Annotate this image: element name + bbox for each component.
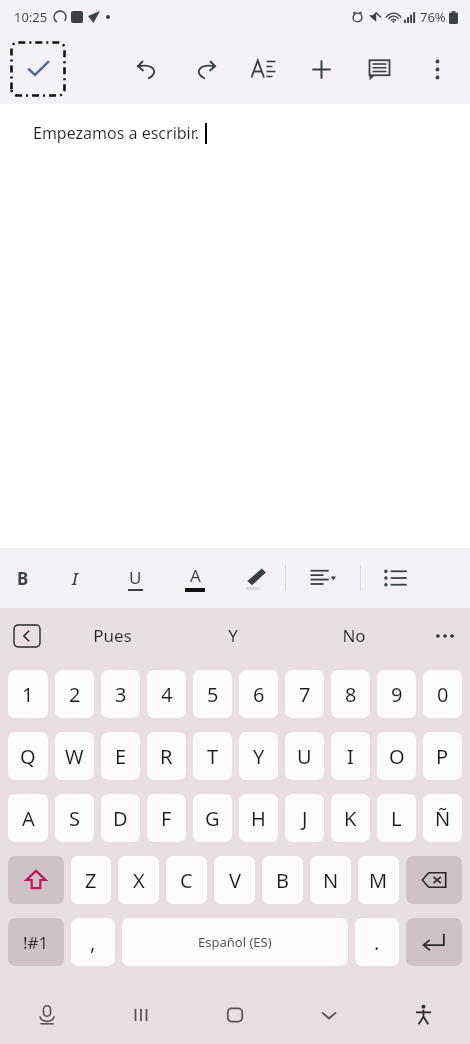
button[interactable]: Symbols bbox=[8, 918, 64, 966]
button[interactable]: A bbox=[8, 794, 48, 842]
button[interactable]: 3 bbox=[101, 670, 140, 718]
staticText: U bbox=[129, 566, 142, 589]
button[interactable]: 9 bbox=[377, 670, 416, 718]
button[interactable]: Alignment bbox=[286, 548, 360, 608]
button[interactable]: H bbox=[239, 794, 278, 842]
button[interactable]: Y bbox=[172, 608, 293, 663]
button[interactable]: L bbox=[377, 794, 416, 842]
staticText: B bbox=[276, 867, 289, 894]
button[interactable]: Period bbox=[355, 918, 399, 966]
staticText: 5 bbox=[207, 681, 219, 708]
button[interactable]: Comma bbox=[71, 918, 115, 966]
staticText: A bbox=[190, 564, 201, 587]
button[interactable]: Highlight bbox=[225, 548, 285, 608]
button[interactable]: Z bbox=[71, 856, 111, 904]
button[interactable]: No bbox=[293, 608, 414, 663]
button[interactable]: U bbox=[285, 732, 324, 780]
button[interactable]: 4 bbox=[147, 670, 186, 718]
button[interactable]: O bbox=[377, 732, 416, 780]
button[interactable]: P bbox=[423, 732, 462, 780]
button[interactable]: More suggestions bbox=[420, 611, 470, 661]
button[interactable]: Hide keyboard bbox=[282, 985, 376, 1044]
button[interactable]: Italic bbox=[45, 548, 105, 608]
button[interactable]: X bbox=[118, 856, 159, 904]
button[interactable]: Bullet list bbox=[361, 548, 431, 608]
button[interactable]: Accessibility bbox=[376, 985, 470, 1044]
staticText: 1 bbox=[22, 681, 34, 708]
staticText: J bbox=[302, 805, 308, 832]
button[interactable]: D bbox=[101, 794, 140, 842]
staticText: 10:25 bbox=[14, 8, 48, 26]
staticText: A bbox=[22, 805, 35, 832]
staticText: W bbox=[65, 743, 84, 770]
button[interactable]: Y bbox=[239, 732, 278, 780]
button[interactable]: I bbox=[331, 732, 370, 780]
button[interactable]: Q bbox=[8, 732, 48, 780]
button[interactable]: W bbox=[55, 732, 94, 780]
staticText: , bbox=[90, 929, 96, 956]
button[interactable]: C bbox=[166, 856, 207, 904]
button[interactable]: Backspace bbox=[406, 856, 462, 904]
staticText: Pues bbox=[93, 624, 132, 647]
button[interactable]: Home bbox=[188, 985, 282, 1044]
button[interactable]: Shift bbox=[8, 856, 64, 904]
button[interactable]: Add bbox=[292, 40, 350, 98]
button[interactable]: E bbox=[101, 732, 140, 780]
button[interactable]: Text format bbox=[234, 40, 292, 98]
button[interactable]: Enter bbox=[406, 918, 462, 966]
staticText: Q bbox=[20, 743, 36, 770]
button[interactable]: 6 bbox=[239, 670, 278, 718]
staticText: F bbox=[161, 805, 172, 832]
button[interactable]: Space bbox=[122, 918, 348, 966]
button[interactable]: Recent apps bbox=[94, 985, 188, 1044]
button[interactable]: 2 bbox=[55, 670, 94, 718]
button[interactable]: V bbox=[214, 856, 255, 904]
staticText: Y bbox=[253, 743, 265, 770]
button[interactable]: Bold bbox=[0, 548, 45, 608]
staticText: U bbox=[297, 743, 312, 770]
button[interactable]: K bbox=[331, 794, 370, 842]
staticText: I bbox=[72, 567, 78, 590]
button[interactable]: F bbox=[147, 794, 186, 842]
button[interactable]: 0 bbox=[423, 670, 462, 718]
staticText: L bbox=[391, 805, 402, 832]
button[interactable]: 7 bbox=[285, 670, 324, 718]
button[interactable]: Pues bbox=[52, 608, 172, 663]
button[interactable]: 5 bbox=[193, 670, 232, 718]
button[interactable]: 8 bbox=[331, 670, 370, 718]
staticText: Español (ES) bbox=[198, 933, 272, 951]
button[interactable]: T bbox=[193, 732, 232, 780]
staticText: Ñ bbox=[435, 805, 451, 832]
staticText: No bbox=[342, 624, 366, 647]
staticText: 9 bbox=[391, 681, 403, 708]
staticText: 4 bbox=[161, 681, 173, 708]
button[interactable]: B bbox=[262, 856, 303, 904]
button[interactable]: M bbox=[358, 856, 399, 904]
button[interactable]: Voice input bbox=[0, 985, 94, 1044]
staticText: 76% bbox=[420, 8, 446, 26]
staticText: Empezamos a escribir. bbox=[33, 122, 200, 144]
button[interactable]: S bbox=[55, 794, 94, 842]
staticText: R bbox=[160, 743, 173, 770]
button[interactable]: Previous bbox=[14, 625, 40, 647]
staticText: N bbox=[323, 867, 339, 894]
button[interactable]: Ñ bbox=[423, 794, 462, 842]
button[interactable]: Comment bbox=[350, 40, 408, 98]
button[interactable]: Text color bbox=[165, 548, 225, 608]
button[interactable]: Underline bbox=[105, 548, 165, 608]
button[interactable]: Undo bbox=[118, 40, 176, 98]
staticText: V bbox=[229, 867, 241, 894]
staticText: 7 bbox=[299, 681, 311, 708]
button[interactable]: 1 bbox=[8, 670, 48, 718]
button[interactable]: Redo bbox=[176, 40, 234, 98]
staticText: 8 bbox=[345, 681, 357, 708]
button[interactable]: G bbox=[193, 794, 232, 842]
staticText: 6 bbox=[253, 681, 265, 708]
button[interactable]: J bbox=[285, 794, 324, 842]
button[interactable]: More options bbox=[408, 40, 466, 98]
staticText: Z bbox=[85, 867, 97, 894]
button[interactable]: Done bbox=[10, 41, 66, 97]
button[interactable]: R bbox=[147, 732, 186, 780]
staticText: M bbox=[369, 867, 388, 894]
button[interactable]: N bbox=[310, 856, 351, 904]
